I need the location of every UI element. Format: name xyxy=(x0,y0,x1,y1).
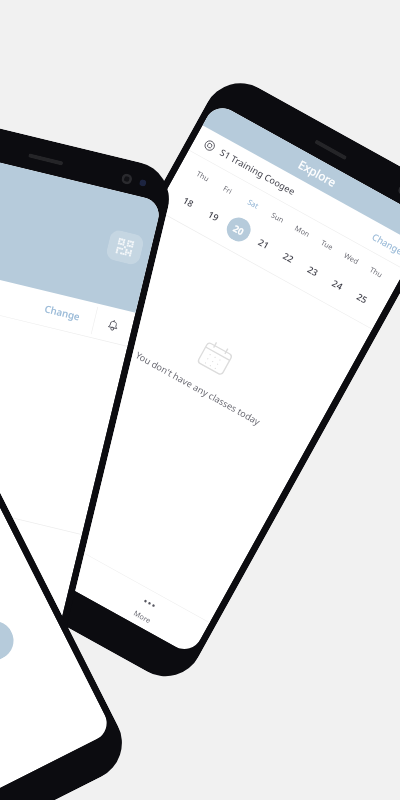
button[interactable]: Tue xyxy=(295,233,342,288)
button[interactable]: Mon xyxy=(270,220,317,274)
staticText: 19 xyxy=(206,208,221,224)
staticText: Explore xyxy=(295,157,339,190)
staticText: Tue xyxy=(319,237,335,252)
button[interactable]: Thu xyxy=(170,164,218,219)
staticText: Fri xyxy=(222,183,234,196)
button[interactable]: Scan QR code xyxy=(105,229,145,266)
staticText: Sat xyxy=(246,197,260,211)
button[interactable]: Change xyxy=(0,255,98,337)
staticText: 18 xyxy=(181,194,196,210)
staticText: You don't have any classes today xyxy=(133,349,263,428)
staticText: 22 xyxy=(281,249,296,265)
staticText: Thu xyxy=(195,168,211,183)
staticText: 24 xyxy=(330,277,345,293)
button[interactable]: Wed xyxy=(319,247,366,301)
button[interactable]: See more xyxy=(0,425,94,534)
staticText: 20 xyxy=(231,222,246,238)
staticText: Change xyxy=(370,230,400,257)
staticText: Sun xyxy=(270,210,286,225)
button[interactable]: Notifications xyxy=(91,304,136,346)
button[interactable]: My bookings xyxy=(0,503,101,595)
button[interactable]: More xyxy=(83,563,210,655)
staticText: Wed xyxy=(342,250,361,266)
staticText: 21 xyxy=(256,236,272,252)
staticText: Thu xyxy=(368,264,384,279)
staticText: More xyxy=(132,608,153,625)
staticText: Change xyxy=(43,302,81,323)
staticText: 25 xyxy=(354,290,370,306)
staticText: Mon xyxy=(293,223,312,239)
staticText: S1 Training Coogee xyxy=(218,146,298,198)
button[interactable]: Sun xyxy=(245,206,293,260)
button[interactable]: Thu xyxy=(344,261,391,315)
staticText: My bookings xyxy=(12,541,56,572)
button[interactable]: Sat xyxy=(220,192,268,247)
button[interactable]: Fri xyxy=(195,178,243,233)
button[interactable]: S1 Training Coogee xyxy=(189,125,400,270)
staticText: 23 xyxy=(305,263,321,279)
